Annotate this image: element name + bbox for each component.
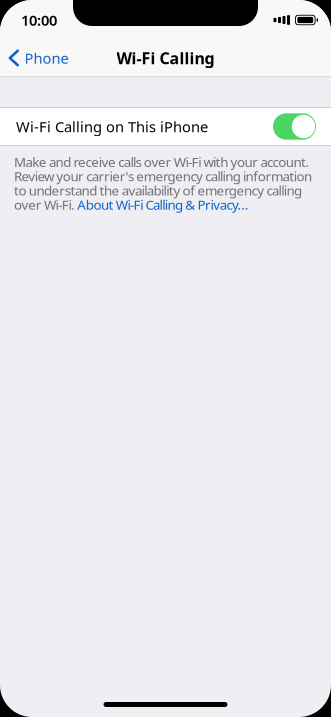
staticText: Make and receive calls over Wi-Fi with y… <box>14 153 312 213</box>
staticText: Wi-Fi Calling on This iPhone <box>16 117 208 136</box>
button[interactable]: Wi-Fi Calling on This iPhone <box>0 108 331 145</box>
staticText: Wi-Fi Calling <box>116 47 214 69</box>
staticText: Phone <box>25 48 69 68</box>
button[interactable]: Phone <box>0 41 75 75</box>
staticText: 10:00 <box>21 10 57 30</box>
